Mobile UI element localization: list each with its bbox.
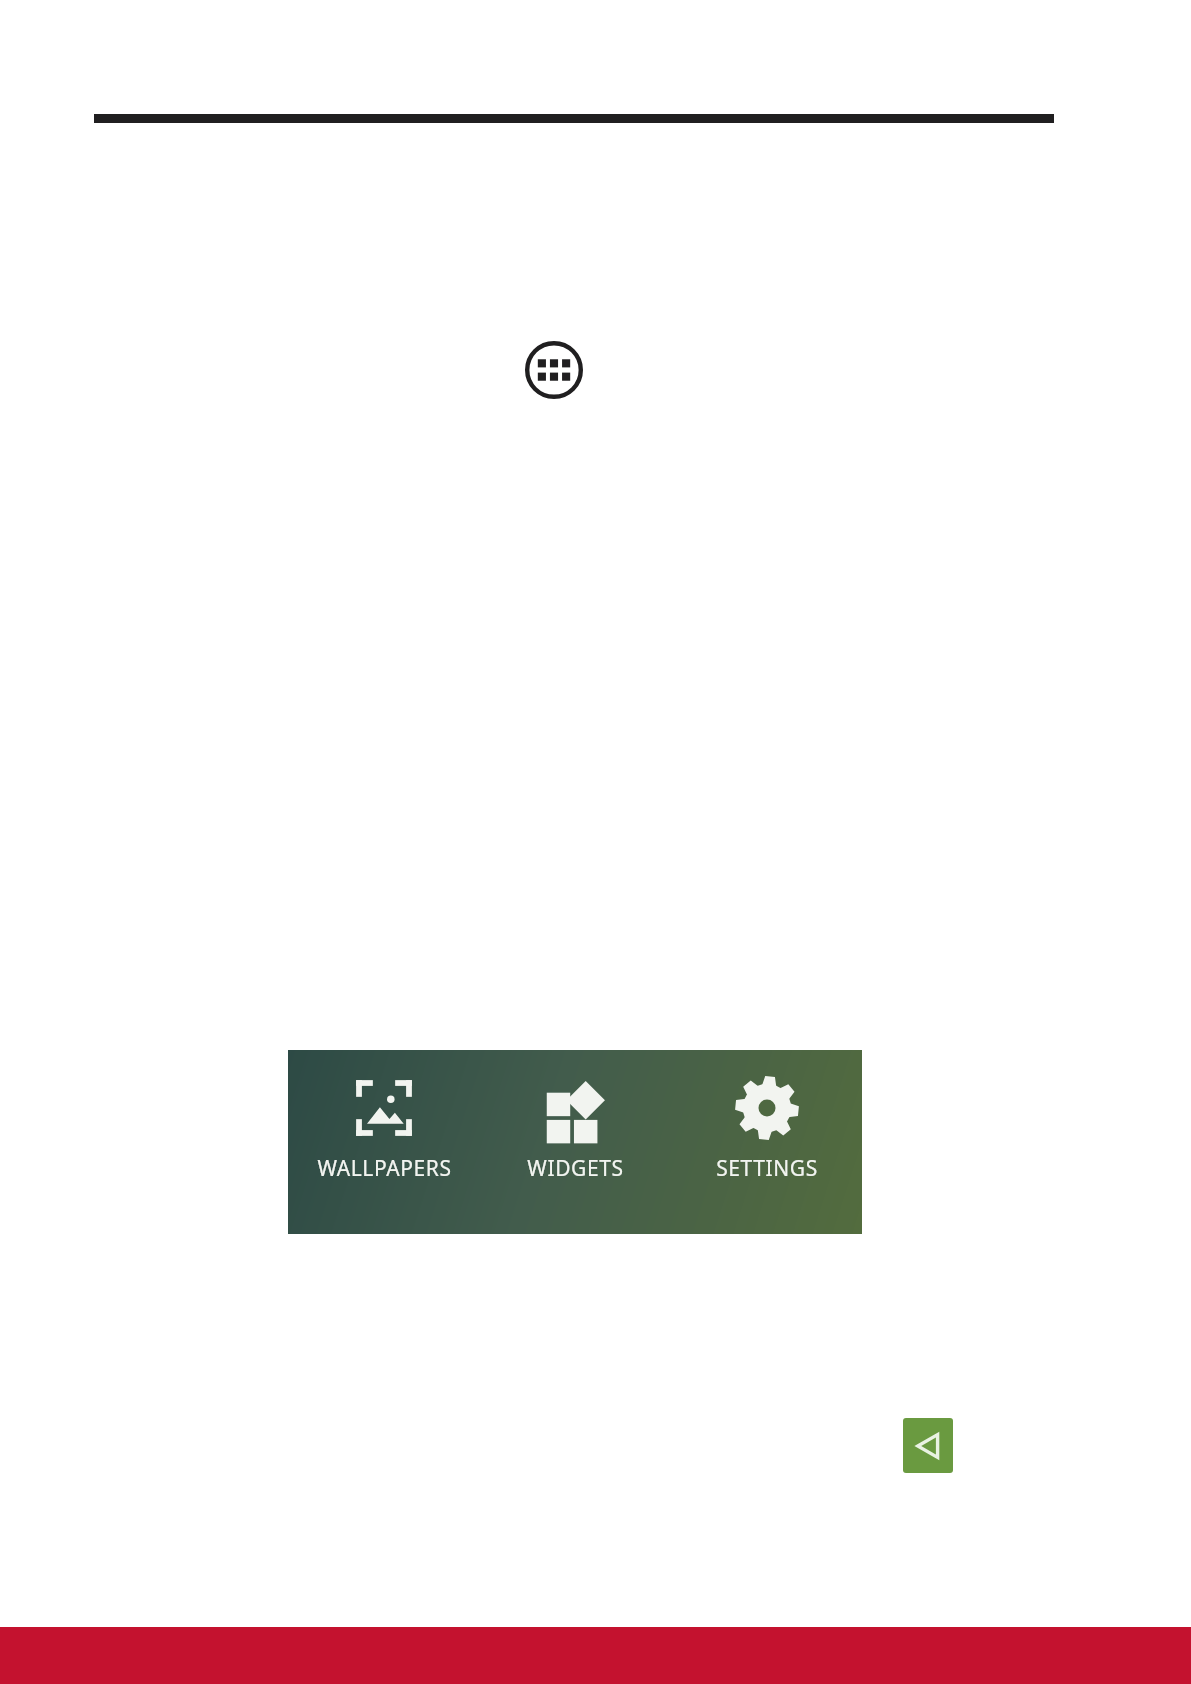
button[interactable]: WIDGETS bbox=[480, 1050, 671, 1234]
button[interactable]: WALLPAPERS bbox=[288, 1050, 480, 1234]
button[interactable]: All apps bbox=[525, 341, 583, 399]
staticText: SETTINGS bbox=[716, 1154, 818, 1183]
staticText: WIDGETS bbox=[527, 1154, 624, 1183]
button[interactable]: Back bbox=[903, 1418, 953, 1473]
staticText: WALLPAPERS bbox=[317, 1154, 452, 1183]
button[interactable]: SETTINGS bbox=[671, 1050, 862, 1234]
